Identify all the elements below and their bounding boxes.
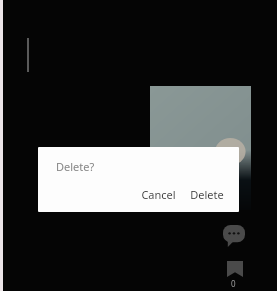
button[interactable]: Delete xyxy=(183,183,231,206)
button[interactable]: Comments xyxy=(220,222,248,250)
staticText: 0 xyxy=(231,278,236,289)
staticText: Delete xyxy=(190,187,224,202)
staticText: Cancel xyxy=(141,187,176,202)
button[interactable]: Save xyxy=(222,256,248,282)
button[interactable]: Cancel xyxy=(134,183,183,206)
staticText: Delete? xyxy=(56,159,95,174)
